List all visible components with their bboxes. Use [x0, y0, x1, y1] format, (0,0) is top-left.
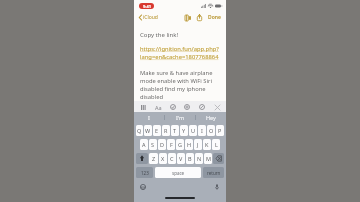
staticText: G: [178, 141, 183, 148]
button[interactable]: V: [177, 153, 185, 164]
staticText: I'm: [176, 114, 185, 121]
staticText: B: [188, 155, 192, 162]
button[interactable]: 123: [136, 167, 153, 178]
button[interactable]: I: [134, 112, 164, 123]
button[interactable]: A: [140, 139, 148, 150]
button[interactable]: Emoji: [139, 183, 147, 191]
staticText: Y: [182, 127, 186, 134]
button[interactable]: Camera: [183, 103, 191, 111]
staticText: Done: [208, 14, 221, 21]
button[interactable]: return: [203, 167, 224, 178]
button[interactable]: T: [171, 125, 179, 136]
staticText: X: [161, 155, 165, 162]
staticText: P: [218, 127, 222, 134]
staticText: J: [197, 141, 199, 148]
staticText: T: [173, 127, 177, 134]
staticText: F: [170, 141, 173, 148]
staticText: O: [209, 127, 214, 134]
button[interactable]: O: [207, 125, 215, 136]
button[interactable]: I'm: [165, 112, 195, 123]
button[interactable]: Q: [136, 125, 143, 136]
button[interactable]: Markup: [183, 13, 192, 22]
button[interactable]: K: [203, 139, 211, 150]
staticText: M: [206, 155, 211, 162]
staticText: V: [179, 155, 183, 162]
staticText: E: [155, 127, 159, 134]
button[interactable]: iCloud: [138, 12, 159, 23]
staticText: U: [191, 127, 196, 134]
button[interactable]: J: [194, 139, 202, 150]
button[interactable]: Close keyboard: [213, 103, 221, 111]
staticText: I: [201, 127, 203, 134]
staticText: K: [205, 141, 209, 148]
button[interactable]: I: [198, 125, 206, 136]
button[interactable]: P: [216, 125, 224, 136]
staticText: H: [187, 141, 192, 148]
staticText: N: [197, 155, 202, 162]
staticText: return: [207, 170, 221, 176]
staticText: A: [142, 141, 146, 148]
button[interactable]: space: [155, 167, 201, 178]
staticText: D: [160, 141, 165, 148]
button[interactable]: M: [204, 153, 212, 164]
button[interactable]: C: [168, 153, 176, 164]
button[interactable]: Table: [139, 103, 147, 111]
button[interactable]: https://ignition.fun/app.php? lang=en&ca…: [140, 45, 219, 61]
staticText: Q: [137, 127, 142, 134]
button[interactable]: B: [186, 153, 194, 164]
button[interactable]: Done: [207, 12, 222, 23]
button[interactable]: S: [149, 139, 157, 150]
staticText: L: [215, 141, 218, 148]
staticText: Aa: [155, 104, 162, 111]
button[interactable]: Y: [180, 125, 188, 136]
button[interactable]: Share: [195, 13, 204, 22]
staticText: S: [151, 141, 155, 148]
button[interactable]: L: [212, 139, 220, 150]
button[interactable]: Dictate: [213, 183, 221, 191]
staticText: C: [170, 155, 174, 162]
button[interactable]: Aa: [154, 103, 162, 111]
button[interactable]: R: [162, 125, 170, 136]
button[interactable]: X: [159, 153, 167, 164]
staticText: Z: [152, 155, 156, 162]
staticText: I: [148, 114, 150, 121]
button[interactable]: N: [195, 153, 203, 164]
button[interactable]: Hey: [196, 112, 226, 123]
button[interactable]: Checklist: [169, 103, 177, 111]
staticText: Copy the link!: [140, 31, 179, 39]
button[interactable]: F: [167, 139, 175, 150]
button[interactable]: E: [153, 125, 161, 136]
button[interactable]: D: [158, 139, 166, 150]
button[interactable]: Shift: [136, 153, 148, 164]
button[interactable]: Backspace: [213, 153, 224, 164]
button[interactable]: Z: [149, 153, 158, 164]
button[interactable]: U: [189, 125, 197, 136]
staticText: Hey: [206, 114, 216, 121]
staticText: W: [145, 127, 151, 134]
button[interactable]: Draw: [198, 103, 206, 111]
staticText: 123: [141, 170, 149, 176]
staticText: Make sure & have airplane mode enable wi…: [140, 69, 213, 101]
button[interactable]: W: [144, 125, 152, 136]
staticText: space: [172, 170, 185, 176]
staticText: iCloud: [143, 14, 158, 21]
staticText: 9:41: [143, 4, 151, 9]
button[interactable]: H: [185, 139, 193, 150]
button[interactable]: G: [176, 139, 184, 150]
staticText: R: [164, 127, 168, 134]
